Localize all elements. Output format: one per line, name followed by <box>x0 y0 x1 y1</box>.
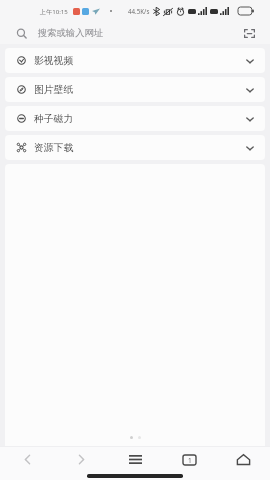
staticText: 44.5K/s <box>128 7 150 15</box>
staticText: 资源下载 <box>34 142 74 154</box>
button[interactable]: 搜索或输入网址 <box>0 22 270 44</box>
staticText: 搜索或输入网址 <box>38 27 104 39</box>
button[interactable]: 影视视频 <box>5 48 265 73</box>
staticText: 图片壁纸 <box>34 84 74 96</box>
staticText: 种子磁力 <box>34 113 74 125</box>
button[interactable]: Scan QR code <box>241 25 257 41</box>
button[interactable]: Tabs <box>162 447 216 472</box>
staticText: 上午10:15 <box>40 7 68 15</box>
staticText: 1 <box>188 456 192 465</box>
button[interactable]: 图片壁纸 <box>5 77 265 102</box>
button[interactable]: 资源下载 <box>5 135 265 160</box>
button[interactable]: 种子磁力 <box>5 106 265 131</box>
button[interactable]: Forward <box>54 447 108 472</box>
button[interactable]: Menu <box>108 447 162 472</box>
button[interactable]: Back <box>0 447 54 472</box>
button[interactable]: Home <box>216 447 270 472</box>
staticText: 影视视频 <box>34 55 74 67</box>
